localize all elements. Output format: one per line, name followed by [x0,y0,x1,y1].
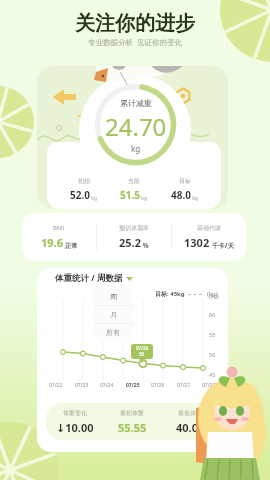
staticText: 目标 [179,177,191,185]
staticText: 07/26 [136,345,148,351]
staticText: (kg) [207,290,218,298]
staticText: 07/26 [151,382,165,389]
staticText: 最初体重 [120,409,144,417]
staticText: 累计减重 [120,98,152,108]
staticText: 最低体重 [178,409,202,417]
staticText: 初始 [78,177,90,185]
staticText: 关注你的进步 [0,11,270,36]
staticText: 基础代谢 [197,224,221,232]
staticText: 19.6 [41,235,63,250]
staticText: 55.55 [118,420,147,435]
staticText: 1302 [184,235,210,250]
button[interactable]: 最低体重 [161,409,219,435]
staticText: 50 [209,351,216,358]
staticText: kg [90,195,98,202]
button[interactable]: 体重统计 / 周数据 [55,272,133,284]
button[interactable]: 所有 [93,324,133,341]
staticText: 25.2 [119,235,141,250]
staticText: 周 [110,292,117,301]
staticText: 当前 [128,177,140,185]
staticText: 正常 [63,241,78,250]
staticText: 月 [110,310,117,319]
button[interactable]: 当前 [120,177,148,202]
staticText: 40.00 [176,420,205,435]
staticText: ↓10.00 [56,420,94,435]
staticText: 千卡/天 [210,241,234,250]
staticText: 专业数据分析 见证你的变化 [0,37,270,47]
staticText: kg [131,143,141,154]
staticText: BMI [53,224,65,232]
staticText: 07/25 [126,382,140,389]
staticText: 48.0 [171,188,191,202]
button[interactable]: 初始 [70,177,98,202]
staticText: 24.70 [105,110,167,143]
staticText: 50 [139,351,145,357]
staticText: 体重变化 [63,409,87,417]
staticText: 07/28 [202,382,216,389]
staticText: kg [140,195,148,202]
staticText: % [141,241,149,250]
button[interactable]: 周 [93,288,133,305]
button[interactable]: 目标 [171,177,199,202]
staticText: 07/27 [177,382,191,389]
button[interactable]: 最初体重 [103,409,161,435]
staticText: 60 [209,311,216,318]
staticText: (kg) [209,292,219,299]
staticText: 55 [209,331,216,338]
button[interactable]: 月 [93,306,133,323]
staticText: 45 [209,371,216,378]
staticText: 52.0 [70,188,90,202]
button[interactable]: 预估体脂率 [97,224,171,250]
button[interactable]: 基础代谢 [172,224,246,250]
button[interactable]: 体重变化 [46,409,103,435]
staticText: 所有 [106,328,120,337]
staticText: 51.5 [120,188,140,202]
staticText: 预估体脂率 [119,224,149,232]
staticText: 07/24 [100,382,114,389]
button[interactable]: 累计减重 [37,66,228,209]
staticText: 07/23 [75,382,89,389]
button[interactable]: BMI [22,224,96,250]
staticText: 07/22 [49,382,63,389]
staticText: 体重统计 / 周数据 [55,272,123,284]
staticText: 目标: 45kg [155,290,185,298]
staticText: kg [191,195,199,202]
